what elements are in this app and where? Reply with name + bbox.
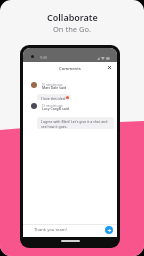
staticText: On the Go.	[53, 24, 91, 34]
staticText: I love this idea!	[41, 96, 66, 100]
button[interactable]: Send message	[105, 226, 113, 234]
staticText: 13 minutes ago	[42, 104, 63, 108]
staticText: I agree with Matt! Let's give it a shot …	[41, 119, 108, 124]
staticText: see how it goes.	[41, 124, 68, 129]
staticText: Comments	[59, 66, 81, 72]
staticText: Lucy Cargill said	[42, 106, 69, 111]
button[interactable]: Close	[105, 63, 114, 72]
staticText: 15 minutes ago	[42, 83, 63, 87]
staticText: Thank you team!	[34, 227, 67, 233]
staticText: Matt Dale said	[42, 85, 67, 90]
staticText: Collaborate	[47, 11, 98, 23]
staticText: 9:00	[40, 55, 48, 60]
